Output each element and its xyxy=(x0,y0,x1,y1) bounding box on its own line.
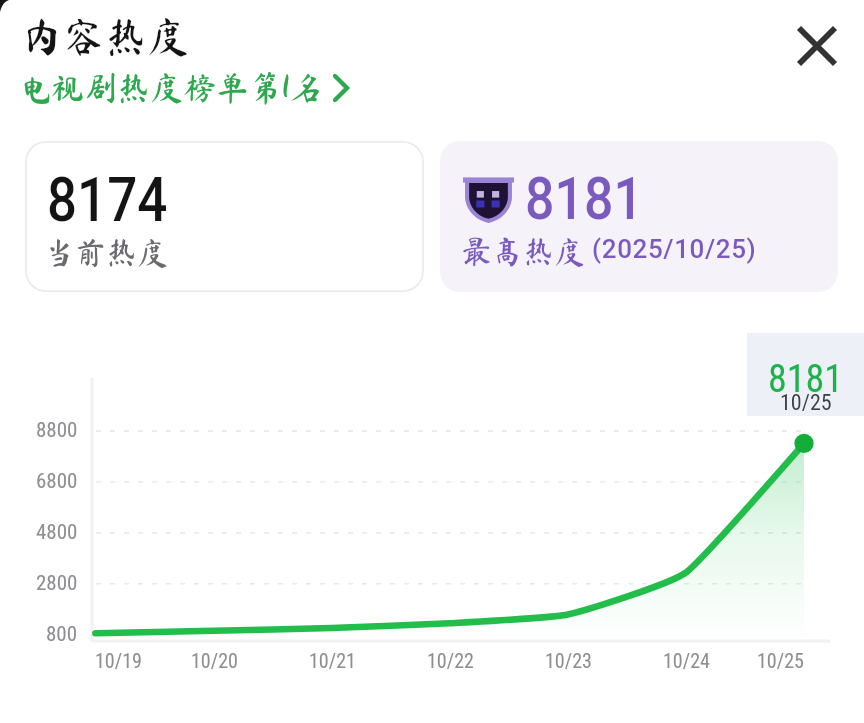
staticText: 10/24 xyxy=(663,649,710,672)
staticText: 4800 xyxy=(36,520,78,545)
staticText: 10/22 xyxy=(427,649,474,672)
button[interactable]: 电视剧热度榜单第1名 xyxy=(18,71,349,104)
staticText: 10/21 xyxy=(309,649,356,672)
staticText: 10/19 xyxy=(95,649,142,672)
staticText: 内容热度 xyxy=(21,15,190,57)
staticText: 电视剧热度榜单第1名 xyxy=(18,71,322,104)
staticText: 800 xyxy=(46,622,78,647)
staticText: 10/25 xyxy=(757,649,804,672)
staticText: 8800 xyxy=(36,418,78,443)
staticText: 8181 xyxy=(768,357,844,402)
staticText: 10/23 xyxy=(545,649,592,672)
button[interactable]: Close xyxy=(784,13,850,79)
staticText: (2025/10/25) xyxy=(585,234,757,264)
button[interactable]: 8181 xyxy=(440,141,838,292)
staticText: 10/25 xyxy=(780,390,832,416)
staticText: 最高热度 xyxy=(461,236,585,267)
button[interactable]: 8174 xyxy=(25,141,424,292)
staticText: 10/20 xyxy=(191,649,238,672)
staticText: 8174 xyxy=(47,164,168,235)
staticText: 6800 xyxy=(36,469,78,494)
staticText: 8181 xyxy=(525,164,644,233)
staticText: 当前热度 xyxy=(44,237,168,268)
button[interactable]: 8181 xyxy=(747,333,864,416)
staticText: 2800 xyxy=(36,571,78,596)
